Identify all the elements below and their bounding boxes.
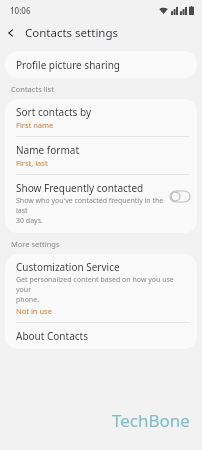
staticText: Name format xyxy=(16,143,79,157)
button[interactable]: Back xyxy=(0,22,22,44)
staticText: Sort contacts by xyxy=(16,105,91,119)
staticText: 10:06 xyxy=(10,5,31,16)
staticText: Not in use xyxy=(16,306,52,316)
staticText: 30 days. xyxy=(16,216,43,226)
staticText: TechBone xyxy=(112,409,190,432)
staticText: About Contacts xyxy=(16,329,88,343)
staticText: Show Frequently contacted xyxy=(16,181,144,195)
staticText: First, last xyxy=(16,158,48,168)
staticText: Get personalized content based on how yo… xyxy=(16,275,188,295)
staticText: Show who you've contacted frequently in … xyxy=(16,196,167,216)
button[interactable]: Sort contacts by xyxy=(5,99,197,136)
button[interactable]: About Contacts xyxy=(5,323,197,349)
staticText: Contacts list xyxy=(11,84,54,94)
staticText: More settings xyxy=(11,239,60,249)
button[interactable]: Show Frequently contacted toggle xyxy=(170,191,190,202)
staticText: First name xyxy=(16,120,54,130)
staticText: Customization Service xyxy=(16,260,120,274)
staticText: Profile picture sharing xyxy=(16,58,120,72)
button[interactable]: Profile picture sharing xyxy=(5,51,197,78)
staticText: phone. xyxy=(16,295,40,305)
staticText: Contacts settings xyxy=(25,25,119,41)
button[interactable]: Name format xyxy=(5,137,197,174)
button[interactable]: Show Frequently contacted xyxy=(5,175,197,233)
button[interactable]: Customization Service xyxy=(5,254,197,322)
